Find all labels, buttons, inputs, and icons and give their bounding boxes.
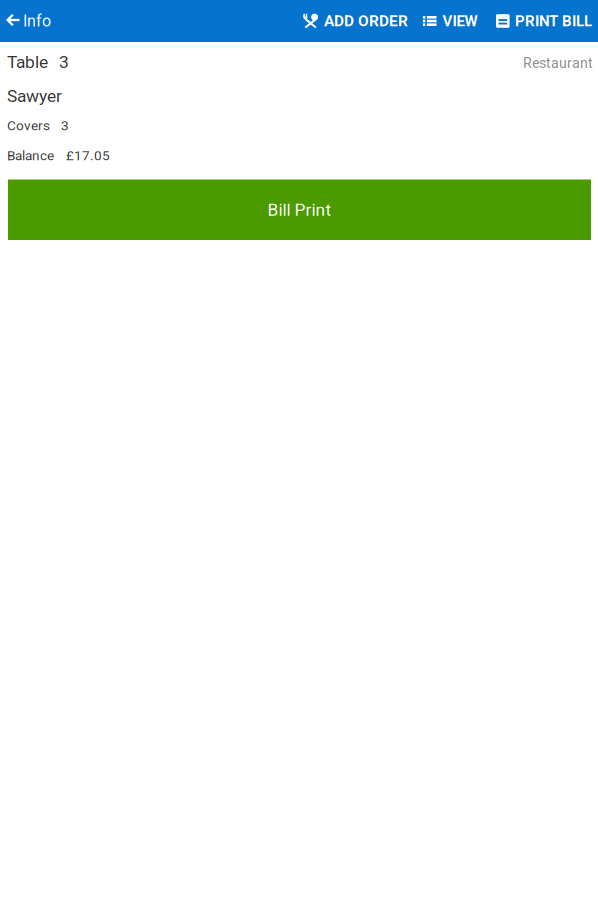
button[interactable]: ADD ORDER — [297, 0, 415, 42]
staticText: ADD ORDER — [324, 12, 408, 30]
staticText: Info — [23, 12, 51, 30]
staticText: £17.05 — [66, 148, 110, 163]
staticText: 3 — [61, 118, 69, 133]
staticText: 3 — [59, 52, 69, 72]
staticText: Balance — [7, 148, 54, 163]
staticText: VIEW — [442, 12, 477, 30]
staticText: Table — [7, 52, 48, 72]
button[interactable]: VIEW — [415, 0, 485, 42]
button[interactable]: PRINT BILL — [485, 0, 598, 42]
button[interactable]: Bill Print — [8, 179, 591, 240]
staticText: Bill Print — [267, 200, 331, 220]
staticText: Restaurant — [523, 55, 593, 72]
button[interactable]: Info — [0, 0, 60, 42]
staticText: PRINT BILL — [515, 12, 592, 30]
staticText: Sawyer — [7, 86, 62, 106]
staticText: Covers — [7, 118, 50, 133]
